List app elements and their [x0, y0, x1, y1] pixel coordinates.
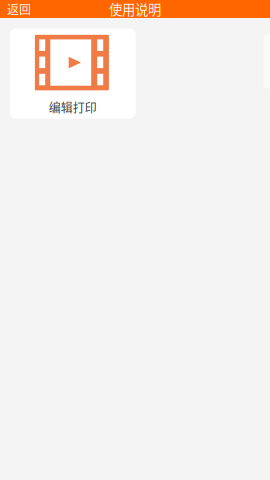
button[interactable]: 返回 — [0, 0, 38, 18]
button[interactable]: 编辑打印 — [10, 29, 136, 119]
staticText: 返回 — [7, 0, 31, 18]
staticText: 编辑打印 — [49, 99, 97, 116]
staticText: 使用说明 — [109, 0, 161, 19]
